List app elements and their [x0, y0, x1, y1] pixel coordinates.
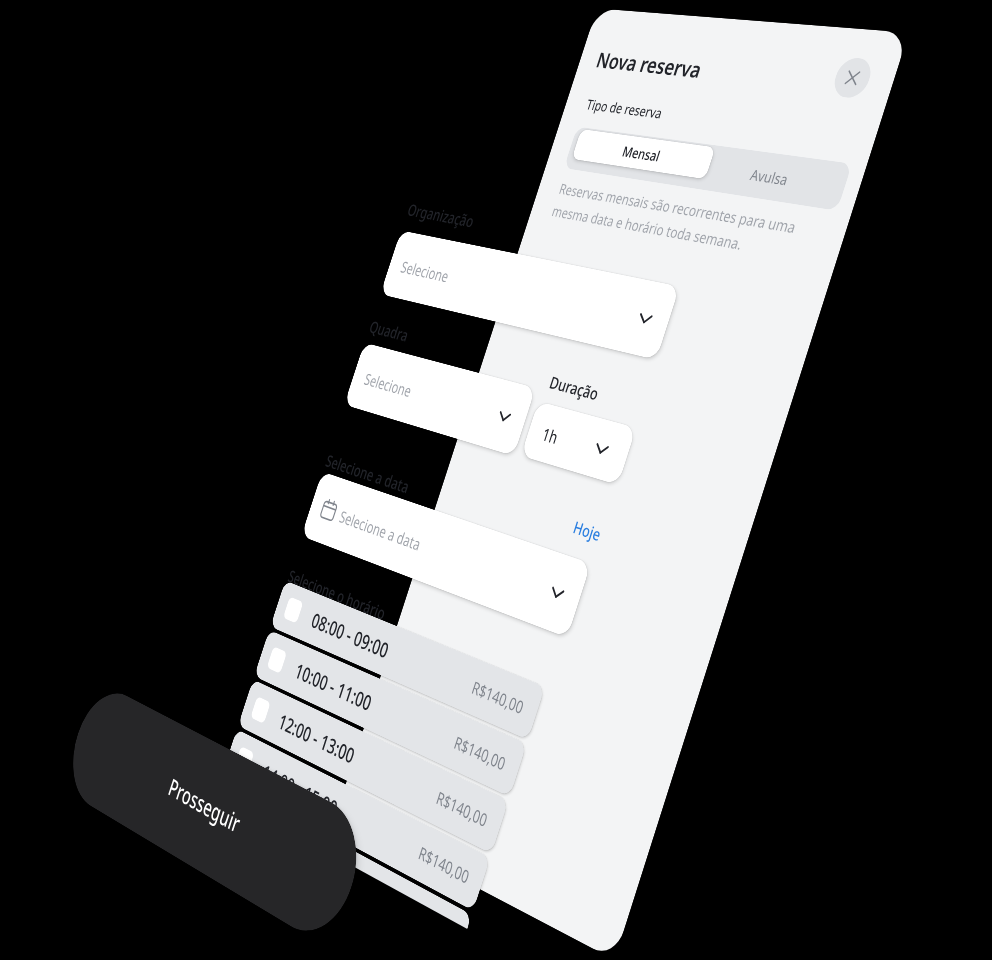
button[interactable]: 16:00 - 17:00 — [216, 779, 472, 929]
button[interactable]: Avulsa — [692, 144, 852, 211]
staticText: R$140,00 — [434, 661, 527, 723]
staticText: 12:00 - 13:00 — [275, 707, 358, 770]
staticText: Quadra — [353, 316, 638, 455]
staticText: 10:00 - 11:00 — [292, 657, 376, 718]
button[interactable]: Selecione — [344, 342, 536, 456]
staticText: 1h — [539, 422, 562, 448]
button[interactable]: 10:00 - 11:00 — [254, 630, 527, 797]
staticText: Reservas mensais são recorrentes para um… — [541, 178, 831, 297]
staticText: Selecione — [362, 368, 415, 401]
staticText: Avulsa — [748, 164, 791, 189]
staticText: Selecione o horário — [271, 564, 547, 741]
staticText: Prosseguir — [165, 771, 245, 840]
staticText: Selecione a data — [309, 449, 589, 609]
button[interactable]: Prosseguir — [60, 679, 372, 950]
button[interactable]: 1h — [521, 401, 636, 485]
button[interactable]: Selecione a data — [301, 471, 591, 638]
button[interactable]: Selecione — [380, 230, 680, 360]
staticText: Organização — [391, 199, 681, 321]
staticText: R$140,00 — [416, 715, 508, 779]
button[interactable]: Mensal — [571, 129, 716, 179]
staticText: 14:00 - 15:00 — [259, 758, 341, 823]
staticText: Selecione — [398, 256, 452, 286]
staticText: Duração — [532, 371, 877, 530]
staticText: R$140,00 — [399, 769, 490, 836]
button[interactable]: 14:00 - 15:00 — [221, 729, 490, 911]
staticText: Mensal — [620, 142, 663, 165]
staticText: Tipo de reserva — [572, 95, 861, 190]
staticText: Nova reserva — [574, 45, 874, 167]
button[interactable]: Fechar — [830, 56, 876, 99]
button[interactable]: 08:00 - 09:00 — [270, 580, 545, 740]
button[interactable]: 12:00 - 13:00 — [238, 679, 509, 854]
staticText: R$140,00 — [381, 823, 472, 893]
staticText: Selecione a data — [337, 505, 424, 555]
staticText: 08:00 - 09:00 — [308, 606, 393, 665]
staticText: Hoje — [525, 505, 604, 591]
